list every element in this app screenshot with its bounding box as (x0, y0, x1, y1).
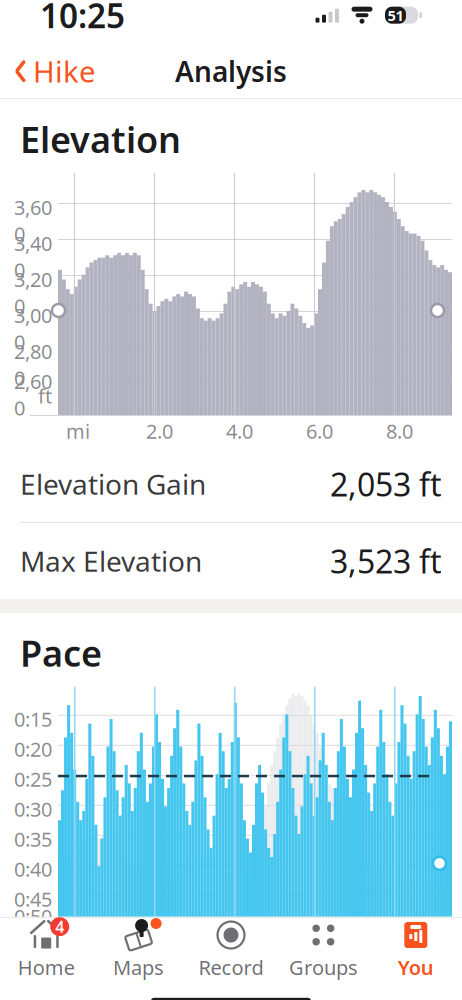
staticText: 3,400 (14, 230, 52, 283)
staticText: 3,523 ft (330, 540, 442, 582)
staticText: 4 (55, 916, 64, 937)
staticText: Elevation (20, 115, 181, 163)
staticText: Max Elevation (20, 542, 202, 580)
staticText: Record (198, 954, 263, 981)
button[interactable]: Hike (0, 44, 110, 99)
button[interactable]: You (370, 913, 462, 987)
staticText: 3,200 (14, 266, 52, 319)
staticText: 0:20 (14, 736, 52, 762)
staticText: 2,600 (14, 368, 52, 421)
staticText: Pace (20, 629, 102, 677)
staticText: Home (18, 954, 75, 981)
button[interactable]: Groups (277, 913, 370, 987)
staticText: You (398, 954, 434, 981)
staticText: 4.0 (226, 418, 253, 444)
staticText: 8.0 (386, 418, 413, 444)
staticText: 0:15 (14, 706, 52, 732)
staticText: 0:40 (14, 856, 52, 882)
staticText: 0:30 (14, 796, 52, 822)
staticText: 0:45 (14, 886, 52, 912)
button[interactable]: 4 (0, 913, 92, 987)
staticText: 51 (387, 5, 403, 25)
staticText: 6.0 (306, 418, 333, 444)
staticText: 2,800 (14, 338, 52, 391)
staticText: mi (66, 418, 90, 444)
staticText: 3,600 (14, 194, 52, 247)
staticText: Hike (33, 52, 96, 91)
staticText: 2,053 ft (330, 463, 442, 505)
staticText: 10:25 (40, 0, 125, 37)
staticText: 2.0 (146, 418, 173, 444)
staticText: 3,000 (14, 302, 52, 355)
staticText: 0:25 (14, 766, 52, 792)
staticText: Groups (289, 954, 358, 981)
staticText: 0:35 (14, 826, 52, 852)
button[interactable]: Record (185, 913, 277, 987)
button[interactable]: Maps (92, 913, 185, 987)
staticText: Elevation Gain (20, 465, 206, 503)
staticText: 0:50 (14, 903, 52, 930)
staticText: ft (38, 382, 52, 409)
staticText: Analysis (175, 53, 287, 90)
staticText: Maps (113, 954, 164, 981)
